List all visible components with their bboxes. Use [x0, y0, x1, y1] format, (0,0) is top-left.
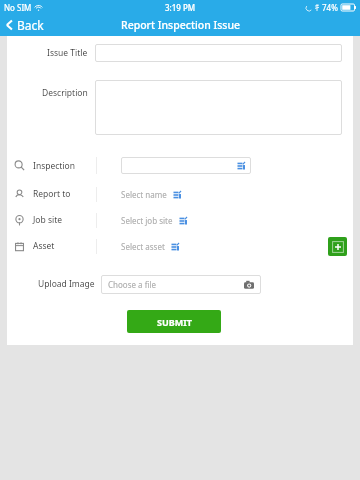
staticText: Select name: [121, 189, 167, 200]
button[interactable]: Back: [0, 15, 54, 35]
staticText: No SIM: [4, 2, 32, 13]
staticText: Report Inspection Issue: [121, 18, 240, 32]
staticText: Select job site: [121, 215, 173, 226]
button[interactable]: Job site: [7, 210, 353, 230]
staticText: Upload Image: [38, 278, 95, 290]
staticText: Job site: [33, 214, 63, 226]
staticText: Description: [42, 87, 88, 99]
button[interactable]: SUBMIT: [127, 310, 221, 333]
staticText: Back: [17, 17, 44, 33]
staticText: 3:19 PM: [165, 2, 196, 13]
button[interactable]: [95, 44, 342, 62]
staticText: Issue Title: [47, 47, 88, 59]
button[interactable]: Inspection: [7, 153, 353, 178]
button[interactable]: Asset: [7, 236, 353, 256]
staticText: Choose a file: [108, 279, 157, 290]
button[interactable]: Report to: [7, 184, 353, 204]
button[interactable]: [95, 80, 342, 135]
button[interactable]: Add asset: [328, 237, 347, 256]
staticText: SUBMIT: [157, 316, 192, 328]
button[interactable]: Choose a file: [101, 275, 261, 294]
staticText: Asset: [33, 240, 55, 252]
staticText: Report to: [33, 188, 71, 200]
staticText: Select asset: [121, 241, 165, 252]
staticText: Inspection: [33, 160, 75, 172]
staticText: 74%: [322, 2, 338, 13]
